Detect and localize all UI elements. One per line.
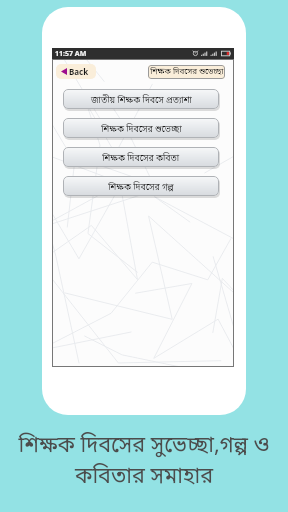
button[interactable]: শিক্ষক দিবসের কবিতা (63, 147, 219, 167)
staticText: শিক্ষক দিবসের শুভেচ্ছা (101, 124, 182, 136)
button[interactable]: জাতীয় শিক্ষক দিবসে প্রত্যাশা (63, 89, 219, 109)
staticText: শিক্ষক দিবসের কবিতা (102, 153, 180, 165)
staticText: Back (69, 66, 89, 77)
staticText: শিক্ষক দিবসের গল্প (108, 182, 174, 194)
button[interactable]: Back (56, 64, 96, 79)
staticText: শিক্ষক দিবসের শুভেচ্ছা (150, 67, 224, 78)
staticText: শিক্ষক দিবসের সুভেচ্ছা,গল্প ও কবিতার সমা… (18, 432, 270, 492)
other: Status icons (193, 48, 232, 59)
button[interactable]: শিক্ষক দিবসের শুভেচ্ছা (63, 118, 219, 138)
staticText: জাতীয় শিক্ষক দিবসে প্রত্যাশা (91, 95, 192, 107)
button[interactable]: শিক্ষক দিবসের গল্প (63, 176, 219, 196)
staticText: 11:57 AM (55, 49, 87, 59)
button[interactable]: শিক্ষক দিবসের শুভেচ্ছা (148, 65, 225, 79)
